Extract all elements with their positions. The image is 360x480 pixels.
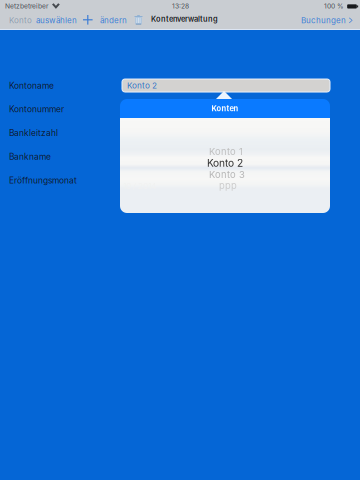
staticText: 10 / 2014 bbox=[123, 181, 156, 191]
staticText: Konto 2 bbox=[127, 81, 157, 90]
button[interactable]: Konto hinzufügen bbox=[78, 10, 98, 30]
staticText: Konto bbox=[9, 15, 32, 25]
staticText: auswählen bbox=[36, 15, 77, 25]
staticText: Kontonummer bbox=[9, 104, 64, 114]
staticText: Netzbetreiber bbox=[5, 2, 49, 10]
staticText: Kontoname bbox=[9, 80, 54, 91]
staticText: Konto 3 bbox=[209, 169, 245, 180]
staticText: ppp bbox=[219, 180, 237, 191]
staticText: Konten bbox=[211, 104, 238, 113]
button[interactable]: Konto löschen bbox=[130, 10, 146, 26]
staticText: 13:28 bbox=[172, 2, 189, 10]
staticText: Bankname bbox=[9, 152, 51, 162]
staticText: Buchungen bbox=[301, 15, 346, 25]
staticText: Bankleitzahl bbox=[9, 128, 58, 138]
staticText: Konto 2 bbox=[207, 157, 243, 169]
staticText: 100 % bbox=[324, 2, 344, 10]
staticText: Kontenverwaltung bbox=[151, 14, 218, 23]
staticText: Konto 1 bbox=[209, 146, 243, 157]
button[interactable]: ändern bbox=[96, 10, 131, 30]
button[interactable]: Konto bbox=[5, 10, 81, 30]
staticText: Eröffnungsmonat bbox=[9, 175, 77, 185]
staticText: ändern bbox=[100, 15, 127, 25]
button[interactable]: Buchungen bbox=[297, 10, 357, 30]
